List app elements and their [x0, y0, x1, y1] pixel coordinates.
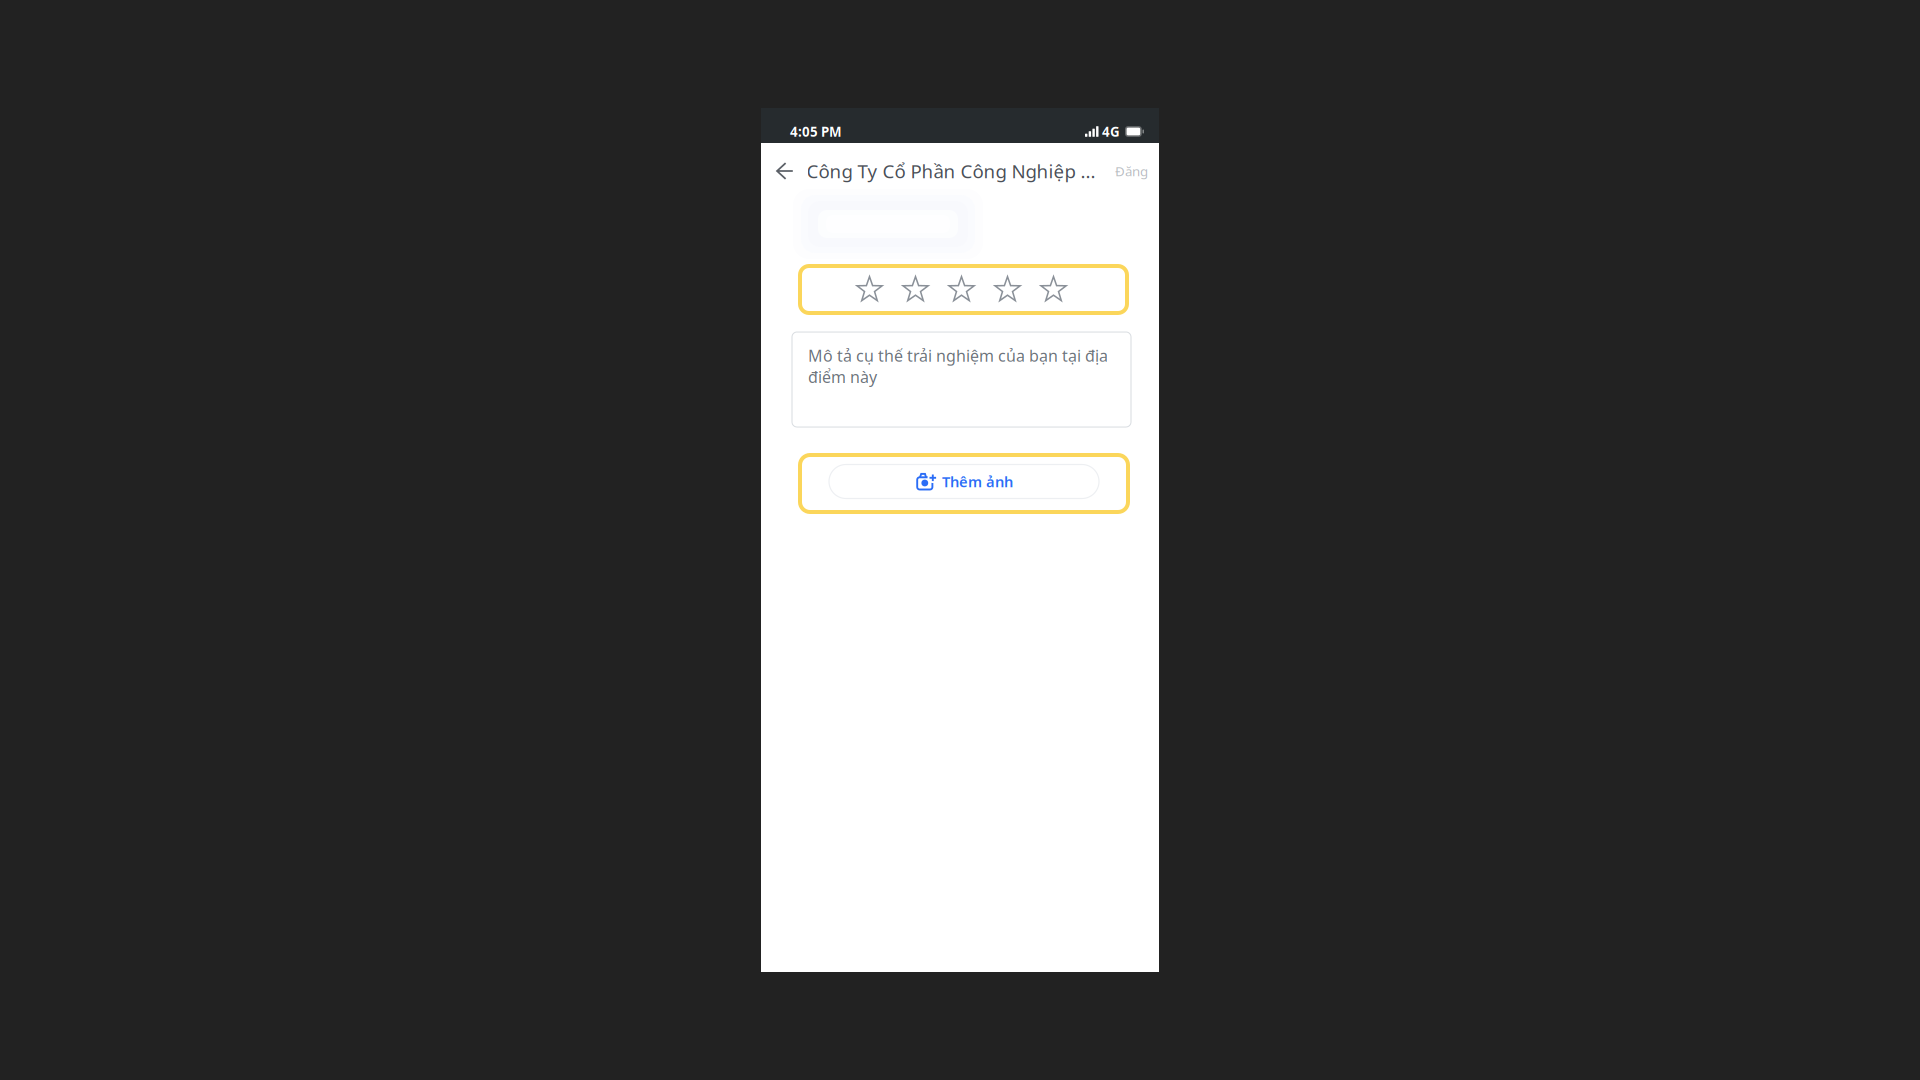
button[interactable]: Thêm ảnh — [800, 455, 1128, 512]
button[interactable] — [800, 266, 1127, 313]
button[interactable]: Back — [764, 148, 806, 194]
staticText: Mô tả cụ thể trải nghiệm của bạn tại địa… — [808, 345, 1108, 387]
staticText: 4:05 PM — [790, 123, 842, 140]
button[interactable]: Đăng — [1106, 148, 1157, 194]
staticText: Thêm ảnh — [942, 472, 1013, 491]
staticText: 4G — [1102, 123, 1120, 140]
staticText: Đăng — [1115, 162, 1148, 180]
staticText: Công Ty Cổ Phần Công Nghiệp ... — [806, 159, 1095, 183]
